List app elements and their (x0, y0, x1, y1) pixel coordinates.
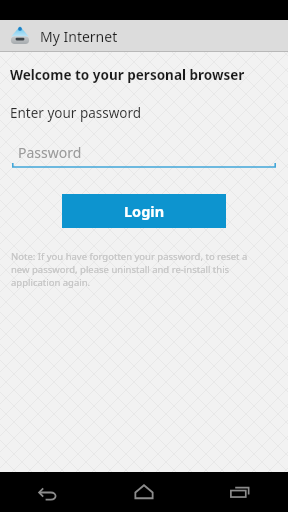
staticText: Login (124, 201, 165, 221)
staticText: Password (18, 143, 82, 162)
staticText: Note: If you have forgotten your passwor… (11, 250, 268, 289)
button[interactable]: Password (12, 142, 276, 168)
button[interactable]: Back (21, 472, 75, 512)
button[interactable]: Recent apps (213, 472, 267, 512)
button[interactable]: Home (117, 472, 171, 512)
staticText: My Internet (40, 27, 118, 46)
button[interactable]: Login (62, 194, 226, 228)
staticText: Welcome to your personal browser (10, 66, 245, 84)
staticText: Enter your password (10, 104, 142, 122)
